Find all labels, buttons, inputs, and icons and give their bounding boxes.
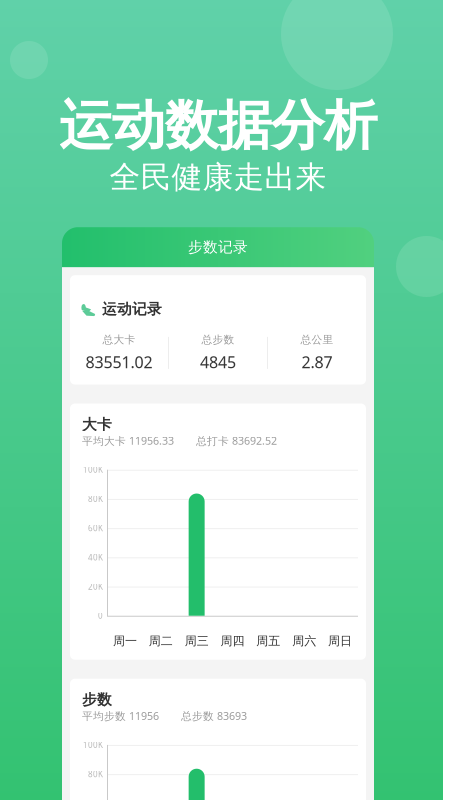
staticText: 80K <box>88 494 103 504</box>
staticText: 总公里 <box>300 333 333 346</box>
staticText: 平均大卡 11956.33 <box>82 434 174 448</box>
staticText: 平均步数 11956 <box>82 709 159 723</box>
staticText: 100K <box>83 464 103 475</box>
staticText: 步数 <box>82 691 112 709</box>
staticText: 周四 <box>220 634 244 648</box>
staticText: 周六 <box>292 634 316 648</box>
staticText: 全民健康走出来 <box>109 158 326 196</box>
staticText: 40K <box>88 552 103 563</box>
staticText: 0 <box>98 610 103 621</box>
staticText: 运动数据分析 <box>59 93 377 158</box>
staticText: 20K <box>88 581 103 592</box>
staticText: 60K <box>88 523 103 533</box>
staticText: 运动记录 <box>102 300 162 318</box>
staticText: 2.87 <box>301 351 332 372</box>
staticText: 80K <box>88 769 103 779</box>
staticText: 周日 <box>328 634 352 648</box>
staticText: 大卡 <box>82 415 112 433</box>
staticText: 周二 <box>149 634 173 648</box>
staticText: 总大卡 <box>102 333 135 346</box>
staticText: 总步数 83693 <box>181 709 247 723</box>
staticText: 4845 <box>200 351 236 372</box>
staticText: 周三 <box>185 634 209 648</box>
staticText: 83551.02 <box>85 351 152 372</box>
staticText: 总打卡 83692.52 <box>196 434 277 448</box>
staticText: 周五 <box>256 634 280 648</box>
staticText: 总步数 <box>201 333 234 346</box>
staticText: 步数记录 <box>188 238 248 256</box>
staticText: 周一 <box>113 634 137 648</box>
staticText: 100K <box>83 740 103 750</box>
